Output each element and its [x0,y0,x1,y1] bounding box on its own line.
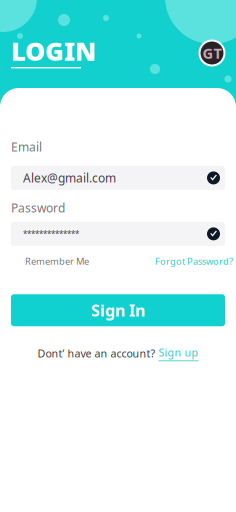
staticText: GT [202,43,221,63]
staticText: Password [11,200,65,216]
staticText: Email [11,139,42,155]
button[interactable]: Remember Me [25,255,89,267]
staticText: Dont’ have an account? [37,346,158,360]
staticText: Sign up [158,345,198,359]
button[interactable]: Brand logo [198,39,225,66]
staticText: Sign In [91,300,145,321]
staticText: LOGIN [11,34,96,68]
staticText: Remember Me [25,255,89,267]
button[interactable]: Sign up [158,345,198,361]
staticText: ************** [23,229,79,239]
button[interactable]: Sign In [11,294,225,326]
button[interactable]: Forgot Password? [155,255,233,267]
staticText: Alex@gmail.com [23,170,116,186]
staticText: Forgot Password? [155,255,233,267]
